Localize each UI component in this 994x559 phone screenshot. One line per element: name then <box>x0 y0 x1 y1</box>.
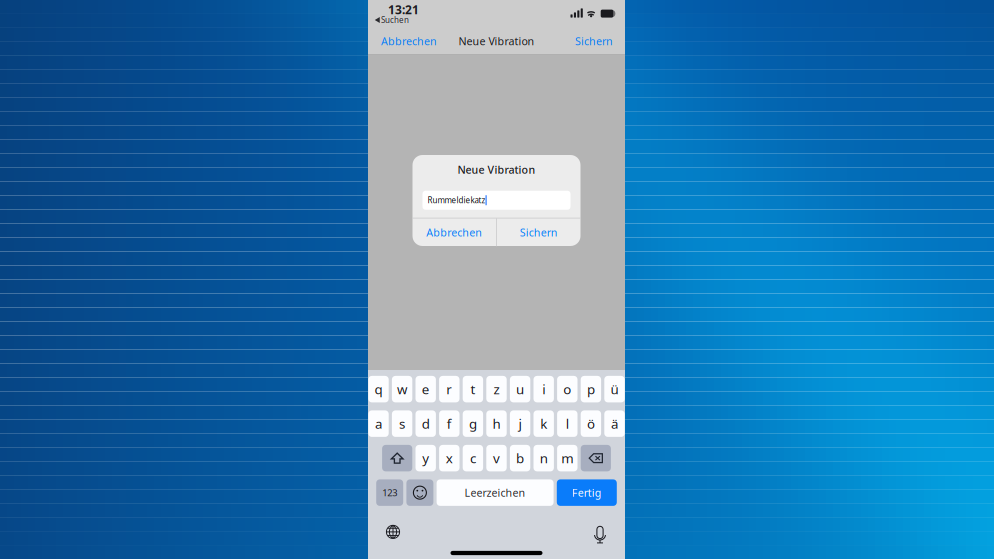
button[interactable]: q <box>368 376 389 402</box>
button[interactable]: ä <box>604 410 625 437</box>
button[interactable]: a <box>368 410 389 437</box>
button[interactable]: j <box>510 410 530 437</box>
staticText: 13:21 <box>388 1 419 17</box>
staticText: g <box>469 415 477 432</box>
staticText: Leerzeichen <box>465 486 526 500</box>
staticText: Sichern <box>520 225 558 240</box>
button[interactable]: z <box>486 376 507 402</box>
button[interactable]: ö <box>581 410 601 437</box>
button[interactable]: t <box>463 376 483 402</box>
button[interactable]: 123 <box>376 479 403 506</box>
staticText: l <box>566 415 569 432</box>
staticText: r <box>446 380 452 398</box>
button[interactable]: h <box>486 410 507 437</box>
staticText: x <box>446 449 453 467</box>
staticText: i <box>542 380 545 398</box>
button[interactable]: Abbrechen <box>368 28 450 54</box>
staticText: Sichern <box>575 34 613 48</box>
staticText: z <box>493 380 499 398</box>
button[interactable]: Tastatur wechseln <box>382 521 404 543</box>
staticText: n <box>540 449 548 467</box>
staticText: f <box>447 415 452 432</box>
button[interactable]: c <box>463 445 483 471</box>
staticText: Suchen <box>381 15 409 25</box>
staticText: y <box>422 449 429 467</box>
staticText: Neue Vibration <box>457 163 535 177</box>
button[interactable]: d <box>415 410 436 437</box>
button[interactable]: Diktieren <box>589 521 611 543</box>
button[interactable]: Löschen <box>581 445 611 471</box>
staticText: w <box>397 380 407 398</box>
staticText: e <box>422 380 430 398</box>
staticText: q <box>374 380 382 398</box>
button[interactable]: g <box>463 410 483 437</box>
button[interactable]: k <box>533 410 554 437</box>
staticText: Neue Vibration <box>458 34 534 48</box>
staticText: s <box>399 415 405 432</box>
button[interactable]: x <box>439 445 459 471</box>
button[interactable]: b <box>510 445 530 471</box>
button[interactable]: l <box>557 410 577 437</box>
button[interactable]: u <box>510 376 530 402</box>
button[interactable]: r <box>439 376 459 402</box>
staticText: d <box>422 415 430 432</box>
button[interactable]: n <box>533 445 554 471</box>
staticText: t <box>470 380 475 398</box>
button[interactable]: o <box>557 376 577 402</box>
button[interactable]: Abbrechen <box>413 218 496 246</box>
button[interactable]: Leerzeichen <box>437 479 554 506</box>
button[interactable]: m <box>557 445 577 471</box>
button[interactable]: s <box>392 410 412 437</box>
button[interactable]: Emoji <box>406 479 433 506</box>
button[interactable]: e <box>415 376 436 402</box>
button[interactable]: Fertig <box>557 479 617 506</box>
button[interactable]: f <box>439 410 459 437</box>
staticText: ä <box>611 415 618 432</box>
staticText: o <box>563 380 571 398</box>
staticText: Abbrechen <box>381 34 437 48</box>
staticText: b <box>516 449 524 467</box>
staticText: ü <box>610 380 618 398</box>
button[interactable]: i <box>533 376 554 402</box>
button[interactable]: Umschalttaste <box>382 445 412 471</box>
button[interactable]: ü <box>604 376 625 402</box>
staticText: m <box>561 449 573 467</box>
staticText: h <box>492 415 500 432</box>
staticText: k <box>540 415 547 432</box>
button[interactable]: w <box>392 376 412 402</box>
button[interactable]: v <box>486 445 507 471</box>
staticText: c <box>470 449 476 467</box>
button[interactable]: Sichern <box>497 218 580 246</box>
staticText: 123 <box>382 486 397 499</box>
button[interactable]: y <box>415 445 436 471</box>
staticText: Abbrechen <box>426 225 482 240</box>
button[interactable]: Sichern <box>563 28 625 54</box>
staticText: Rummeldiekatz <box>427 195 485 205</box>
staticText: ö <box>587 415 595 432</box>
staticText: v <box>493 449 500 467</box>
staticText: p <box>587 380 595 398</box>
button[interactable]: p <box>581 376 601 402</box>
staticText: u <box>516 380 524 398</box>
staticText: j <box>519 415 522 432</box>
staticText: Fertig <box>572 486 602 500</box>
staticText: a <box>375 415 382 432</box>
